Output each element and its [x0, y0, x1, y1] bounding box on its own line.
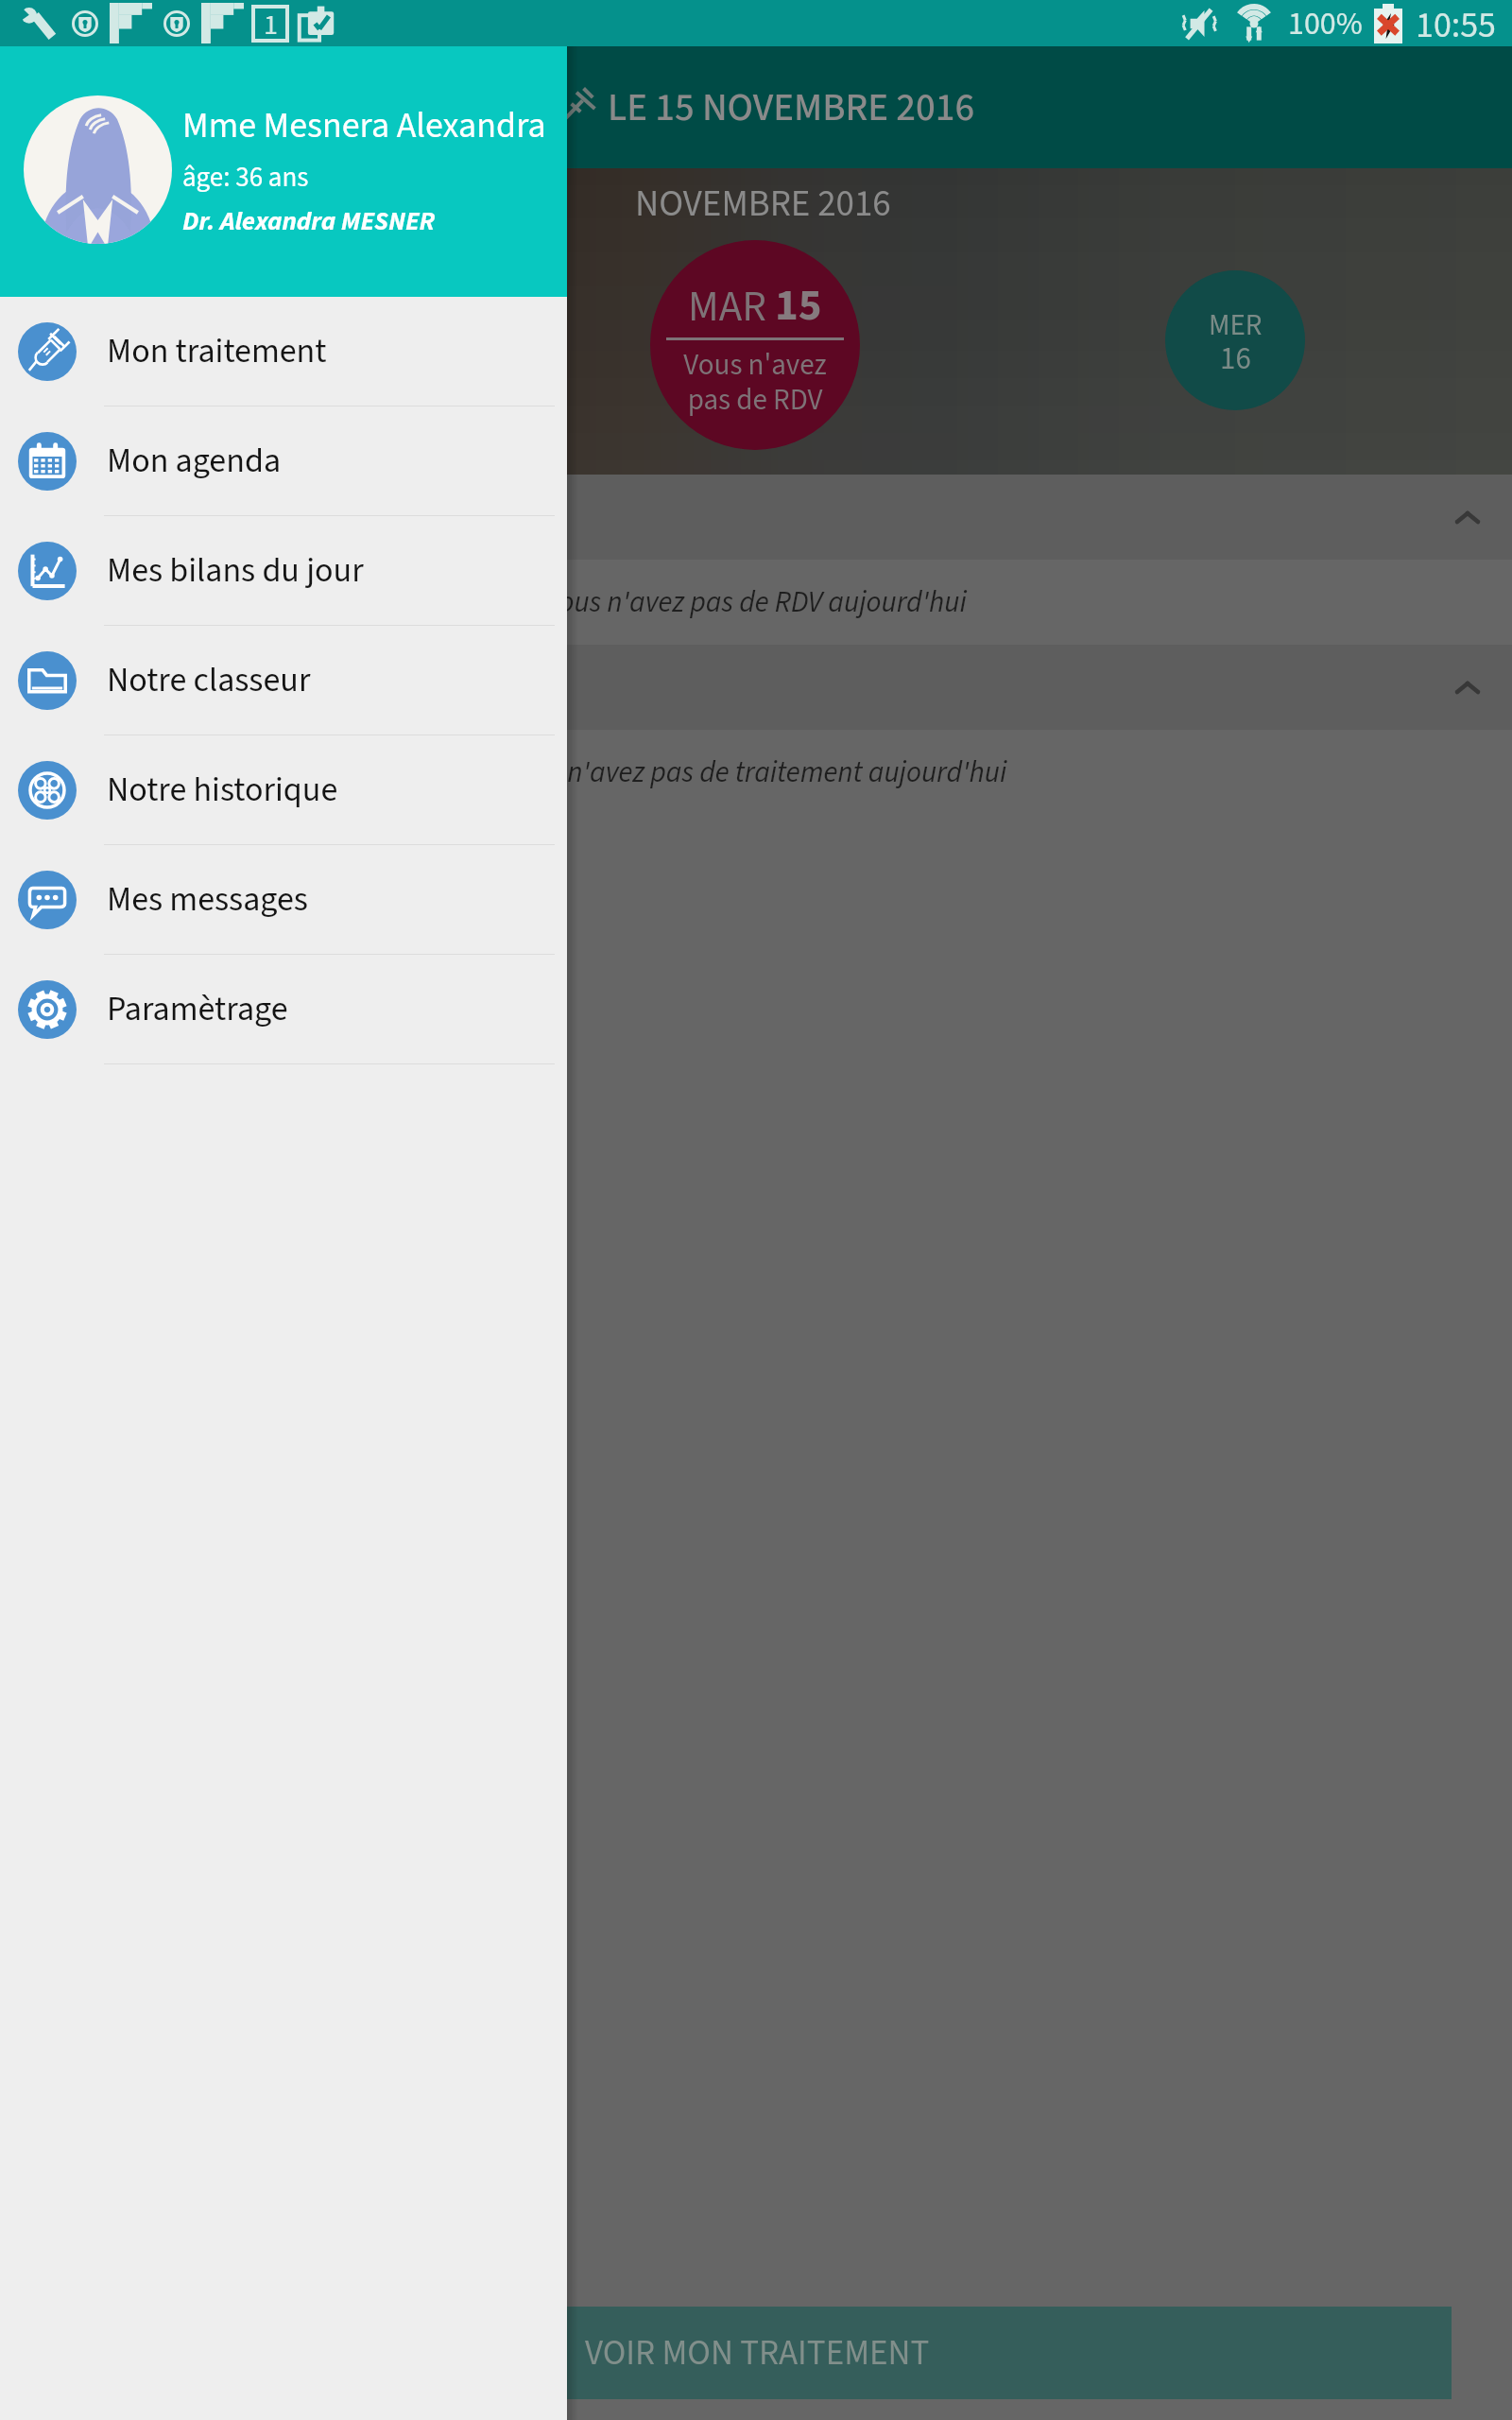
staticText: Vous n'avez pas de RDV	[683, 344, 827, 422]
staticText: Notre historique	[107, 766, 338, 814]
button[interactable]: MON TRAITEMENT	[0, 645, 1512, 730]
staticText: 100%	[1288, 1, 1363, 46]
staticText: Mes bilans du jour	[107, 546, 364, 595]
staticText: Notre classeur	[107, 656, 311, 704]
button[interactable]: Open navigation drawer	[17, 66, 100, 149]
button[interactable]: Notre classeur	[0, 626, 567, 735]
staticText: Vous n'avez pas de RDV aujourd'hui	[545, 581, 967, 623]
staticText: MAR	[688, 277, 775, 337]
button[interactable]: Paramètrage	[0, 955, 567, 1064]
staticText: 1	[264, 5, 278, 43]
button[interactable]: Notre historique	[0, 735, 567, 845]
button[interactable]: Mme Mesnera Alexandra	[0, 46, 567, 297]
staticText: 15	[775, 274, 822, 337]
button[interactable]: Collapse section	[1445, 665, 1490, 710]
staticText: 10:55	[1416, 0, 1497, 46]
staticText: Vous n'avez pas de traitement aujourd'hu…	[506, 752, 1007, 793]
staticText: 16	[1220, 337, 1251, 381]
staticText: Mes messages	[107, 875, 308, 924]
button[interactable]: Mon traitement	[0, 297, 567, 406]
button[interactable]: VOIR MON TRAITEMENT	[0, 2307, 1452, 2399]
button[interactable]: Mes bilans du jour	[0, 516, 567, 626]
staticText: LE 15 NOVEMBRE 2016	[608, 80, 975, 135]
button[interactable]: Mon agenda	[0, 406, 567, 516]
staticText: Paramètrage	[107, 985, 288, 1033]
button[interactable]: MES RENDEZ-VOUS	[0, 475, 1512, 560]
staticText: VOIR MON TRAITEMENT	[585, 2328, 930, 2378]
staticText: Mme Mesnera Alexandra	[182, 100, 546, 151]
staticText: Mon agenda	[107, 437, 282, 485]
staticText: NOVEMBRE 2016	[635, 178, 891, 231]
button[interactable]: Collapse section	[1445, 494, 1490, 540]
staticText: Dr. Alexandra MESNER	[182, 202, 436, 240]
button[interactable]: Mes messages	[0, 845, 567, 955]
staticText: MER	[1209, 304, 1263, 346]
staticText: âge: 36 ans	[182, 158, 309, 197]
staticText: MON TRAITEMENT	[32, 665, 281, 710]
staticText: Mon traitement	[107, 327, 327, 375]
